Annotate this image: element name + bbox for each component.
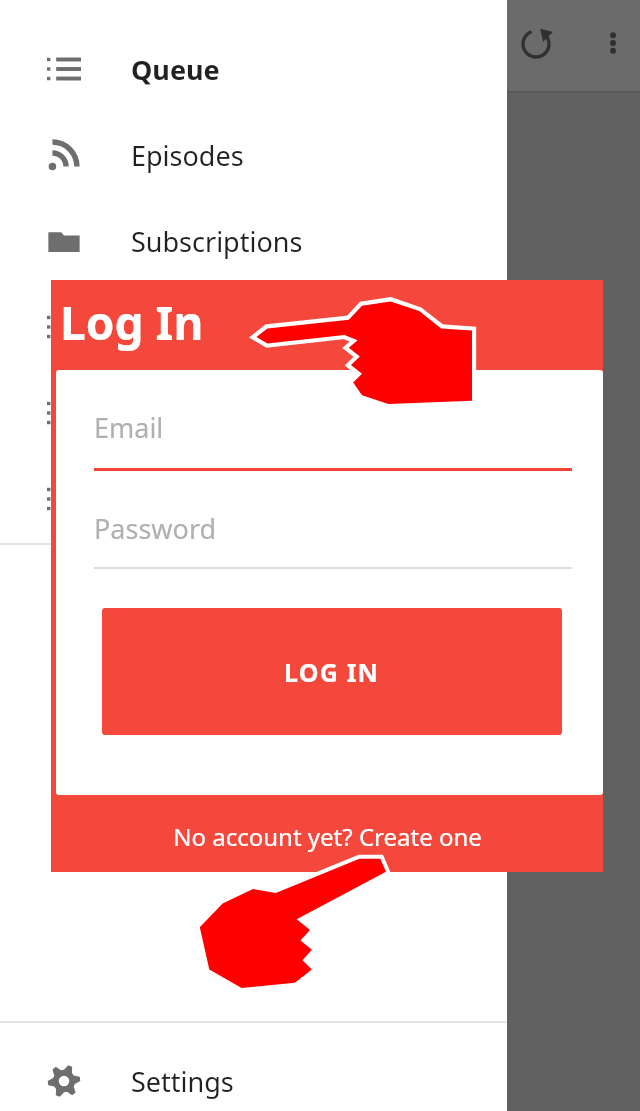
button[interactable]: LOG IN	[102, 608, 562, 735]
button[interactable]: More options	[586, 16, 640, 70]
staticText: Email	[94, 409, 164, 446]
staticText: Queue	[131, 51, 220, 88]
staticText: LOG IN	[284, 655, 380, 689]
staticText: Episodes	[131, 137, 244, 174]
button[interactable]: Episodes	[0, 112, 507, 198]
button[interactable]: No account yet? Create one	[51, 805, 603, 867]
staticText: Subscriptions	[131, 223, 303, 260]
button[interactable]: Refresh	[508, 16, 564, 72]
staticText: No account yet? Create one	[173, 820, 482, 853]
staticText: Password	[94, 510, 217, 547]
button[interactable]: Subscriptions	[0, 198, 507, 284]
staticText: Settings	[131, 1063, 234, 1100]
button[interactable]: Settings	[0, 1038, 507, 1111]
staticText: Log In	[60, 291, 204, 354]
button[interactable]: Queue	[0, 26, 507, 112]
button[interactable]	[0, 456, 507, 542]
button[interactable]	[0, 284, 507, 370]
button[interactable]	[0, 370, 507, 456]
